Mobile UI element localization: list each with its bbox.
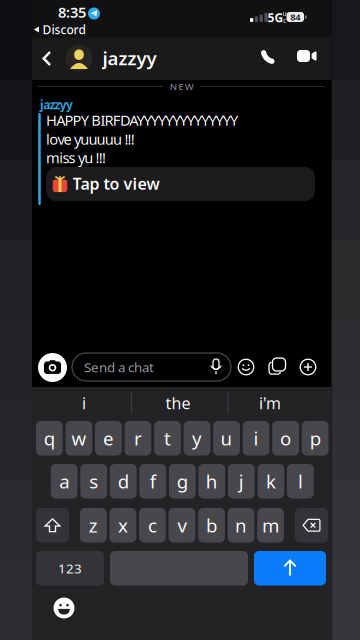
button[interactable]: Discord	[33, 21, 85, 37]
button[interactable]: w	[65, 421, 92, 455]
button[interactable]: y	[184, 421, 210, 455]
staticText: i	[82, 392, 86, 414]
button[interactable]: k	[257, 464, 284, 498]
staticText: 8:35	[58, 2, 86, 22]
staticText: a	[59, 469, 69, 494]
staticText: miss yu !!!	[46, 148, 106, 167]
button[interactable]: z	[80, 508, 107, 542]
staticText: n	[235, 513, 247, 538]
button[interactable]: i	[243, 421, 269, 455]
button[interactable]: b	[198, 508, 225, 542]
button[interactable]: Send a chat	[72, 353, 231, 381]
staticText: l	[298, 469, 303, 494]
staticText: HAPPY BIRFDAYYYYYYYYYYYYYY	[46, 110, 238, 130]
button[interactable]: Emoji	[53, 597, 74, 618]
staticText: k	[266, 469, 276, 494]
staticText: 123	[58, 559, 82, 577]
staticText: Tap to view	[72, 173, 159, 194]
button[interactable]: 123	[36, 551, 104, 585]
button[interactable]: u	[213, 421, 240, 455]
staticText: U	[282, 10, 286, 17]
staticText: jazzyy	[102, 46, 156, 70]
staticText: b	[206, 513, 217, 538]
button[interactable]: h	[198, 464, 225, 498]
button[interactable]: Memories	[268, 357, 286, 375]
button[interactable]: Camera	[38, 353, 67, 382]
staticText: p	[310, 426, 321, 451]
staticText: s	[89, 469, 98, 494]
staticText: u	[220, 426, 232, 451]
staticText: j	[239, 469, 244, 494]
staticText: c	[148, 513, 157, 538]
staticText: NEW	[170, 80, 194, 93]
staticText: w	[71, 426, 86, 451]
button[interactable]: the	[135, 389, 221, 417]
button[interactable]: j	[228, 464, 255, 498]
staticText: 5G	[267, 9, 283, 25]
staticText: i'm	[259, 392, 281, 414]
button[interactable]: s	[80, 464, 107, 498]
button[interactable]: Shift	[36, 508, 69, 542]
button[interactable]: Video call	[297, 48, 319, 64]
staticText: r	[134, 426, 142, 451]
button[interactable]: q	[36, 421, 63, 455]
button[interactable]: jazzyy	[65, 44, 156, 71]
button[interactable]: x	[109, 508, 136, 542]
staticText: f	[150, 469, 156, 494]
staticText: C	[283, 17, 286, 25]
button[interactable]: t	[154, 421, 181, 455]
button[interactable]: r	[125, 421, 151, 455]
staticText: t	[164, 426, 171, 451]
button[interactable]: Send	[254, 551, 326, 585]
staticText: q	[44, 426, 55, 451]
staticText: v	[177, 513, 186, 538]
staticText: z	[89, 513, 98, 538]
staticText: m	[262, 513, 279, 538]
button[interactable]: i'm	[225, 389, 315, 417]
button[interactable]: m	[257, 508, 284, 542]
button[interactable]: Delete	[295, 508, 328, 542]
button[interactable]: i	[39, 389, 129, 417]
button[interactable]: Back	[42, 51, 51, 66]
button[interactable]: p	[302, 421, 328, 455]
staticText: jazzyy	[40, 96, 73, 112]
button[interactable]: l	[287, 464, 314, 498]
staticText: Discord	[42, 21, 85, 37]
button[interactable]: o	[272, 421, 299, 455]
staticText: the	[165, 392, 190, 414]
button[interactable]: f	[139, 464, 166, 498]
staticText: Send a chat	[84, 358, 154, 376]
button[interactable]: g	[169, 464, 196, 498]
button[interactable]: a	[51, 464, 77, 498]
staticText: g	[177, 469, 188, 494]
staticText: h	[206, 469, 218, 494]
staticText: 84	[290, 11, 300, 23]
staticText: y	[192, 426, 202, 451]
button[interactable]: d	[110, 464, 137, 498]
button[interactable]: space	[110, 551, 248, 585]
button[interactable]: Voice call	[260, 47, 280, 67]
button[interactable]: Tap to view	[46, 167, 315, 201]
staticText: x	[118, 513, 128, 538]
staticText: love yuuuuu !!!	[46, 129, 135, 149]
staticText: i	[254, 426, 259, 451]
button[interactable]: n	[228, 508, 254, 542]
button[interactable]: e	[95, 421, 122, 455]
button[interactable]: c	[139, 508, 166, 542]
staticText: d	[118, 469, 129, 494]
staticText: e	[103, 426, 114, 451]
button[interactable]: v	[169, 508, 195, 542]
staticText: o	[280, 426, 291, 451]
button[interactable]: Stickers	[237, 358, 254, 375]
button[interactable]: More	[299, 358, 316, 375]
